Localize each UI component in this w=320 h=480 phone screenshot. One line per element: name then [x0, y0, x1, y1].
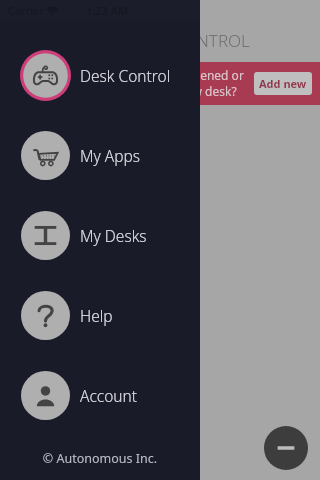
staticText: DESK CONTROL [128, 29, 250, 52]
staticText: Have you opened or added a new desk? [130, 67, 244, 99]
staticText: Add new [259, 76, 307, 91]
staticText: My Apps [80, 145, 141, 166]
button[interactable]: My Apps [0, 115, 200, 195]
button[interactable]: Add new [254, 72, 312, 95]
staticText: Help [80, 305, 113, 326]
staticText: 1:23 AM [86, 3, 129, 18]
button[interactable]: My Desks [0, 195, 200, 275]
button[interactable]: Help [0, 275, 200, 355]
staticText: © Autonomous Inc. [0, 450, 200, 467]
button[interactable]: Have you opened or added a new desk? [0, 62, 320, 105]
button[interactable]: Account [0, 355, 200, 435]
staticText: Desk Control [80, 65, 171, 86]
staticText: My Desks [80, 225, 147, 246]
button[interactable]: Desk Control [0, 35, 200, 115]
button[interactable]: Collapse desk [264, 426, 308, 470]
staticText: Account [80, 385, 138, 406]
